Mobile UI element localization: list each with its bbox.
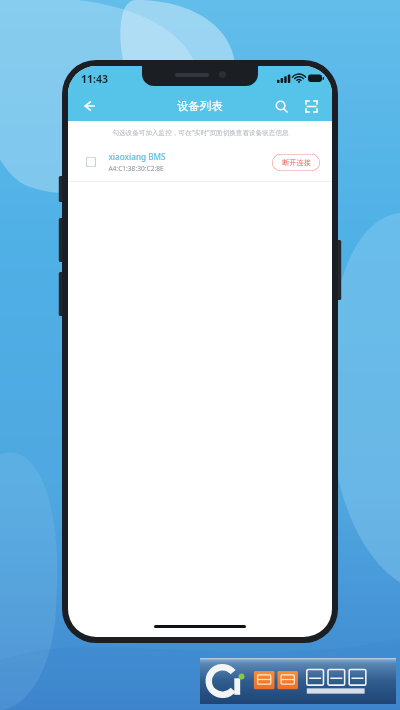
staticText: 设备列表 [177,99,223,113]
button[interactable]: Select device [68,144,332,181]
button[interactable]: Select device [80,151,102,173]
staticText: 断开连接 [282,158,311,167]
staticText: xiaoxiang BMS [108,151,166,162]
button[interactable]: Scan QR code [298,93,324,119]
staticText: 勾选设备可加入监控，可在“实时”页面切换查看设备状态信息 [112,128,289,137]
button[interactable]: Search [268,93,294,119]
staticText: A4:C1:38:30:C2:8E [108,164,164,173]
button[interactable]: Back [74,91,104,121]
staticText: 11:43 [81,72,108,86]
button[interactable]: 断开连接 [272,154,320,171]
